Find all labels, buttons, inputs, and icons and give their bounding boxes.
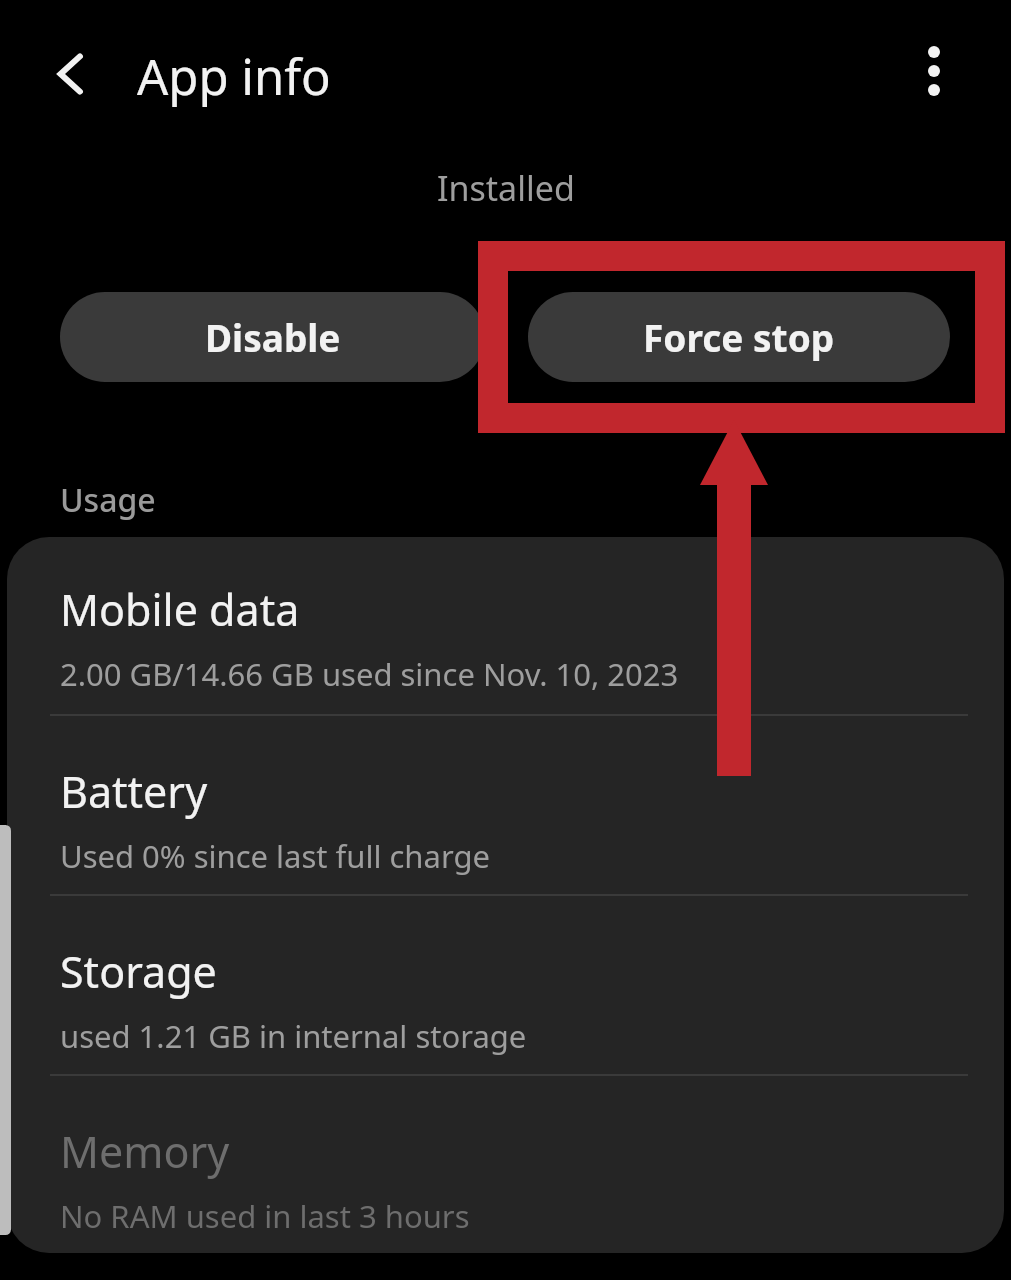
staticText: Disable: [205, 312, 341, 362]
staticText: Installed: [437, 165, 575, 211]
staticText: No RAM used in last 3 hours: [60, 1195, 470, 1237]
staticText: Used 0% since last full charge: [60, 835, 490, 877]
button[interactable]: Disable: [60, 292, 485, 382]
staticText: Force stop: [643, 312, 835, 362]
staticText: Battery: [60, 762, 208, 821]
staticText: Mobile data: [60, 580, 300, 639]
staticText: 2.00 GB/14.66 GB used since Nov. 10, 202…: [60, 653, 679, 695]
button[interactable]: Navigate up: [33, 35, 111, 113]
button[interactable]: More options: [894, 31, 974, 111]
staticText: Storage: [60, 942, 217, 1001]
button[interactable]: Battery: [7, 742, 1004, 874]
button[interactable]: Force stop: [528, 292, 950, 382]
button[interactable]: Mobile data: [7, 560, 1004, 692]
staticText: Usage: [60, 478, 156, 522]
button[interactable]: Memory: [7, 1102, 1004, 1234]
staticText: App info: [137, 43, 331, 110]
staticText: Memory: [60, 1122, 230, 1181]
staticText: used 1.21 GB in internal storage: [60, 1015, 527, 1057]
button[interactable]: Storage: [7, 922, 1004, 1054]
